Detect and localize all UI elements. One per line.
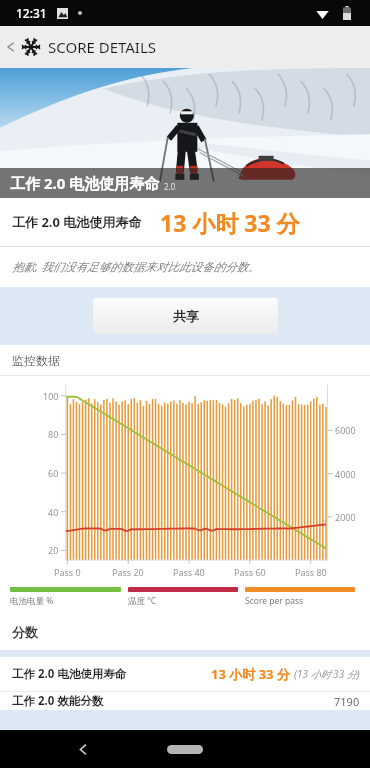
- staticText: 监控数据: [12, 353, 60, 368]
- button[interactable]: Back: [70, 736, 96, 762]
- staticText: 13 小时 33 分: [160, 207, 300, 238]
- staticText: 2000: [335, 511, 356, 523]
- staticText: Pass 40: [173, 566, 205, 578]
- staticText: 共享: [173, 308, 199, 324]
- staticText: 40: [48, 506, 59, 518]
- staticText: 7190: [334, 694, 360, 709]
- staticText: 工作 2.0 电池使用寿命: [10, 173, 160, 193]
- button[interactable]: 工作 2.0 效能分数: [0, 692, 370, 710]
- staticText: 20: [48, 544, 59, 556]
- staticText: 工作 2.0 电池使用寿命: [12, 213, 142, 231]
- staticText: 工作 2.0 电池使用寿命: [12, 666, 127, 682]
- staticText: 电池电量 %: [10, 595, 54, 607]
- staticText: SCORE DETAILS: [48, 37, 157, 57]
- staticText: Pass 0: [54, 566, 81, 578]
- staticText: 4000: [335, 468, 356, 480]
- staticText: (13 小时 33 分): [294, 667, 360, 681]
- button[interactable]: 共享: [93, 298, 278, 334]
- staticText: 12:31: [16, 5, 47, 21]
- staticText: Pass 20: [112, 566, 144, 578]
- staticText: Pass 80: [295, 566, 327, 578]
- staticText: 温度 °C: [128, 595, 157, 607]
- staticText: 13 小时 33 分: [211, 665, 290, 683]
- staticText: 工作 2.0 效能分数: [12, 693, 104, 709]
- staticText: 100: [43, 390, 59, 402]
- staticText: 6000: [335, 424, 356, 436]
- button[interactable]: Home: [167, 745, 203, 754]
- staticText: Pass 60: [234, 566, 266, 578]
- staticText: 60: [48, 467, 59, 479]
- staticText: 分数: [12, 624, 38, 640]
- button[interactable]: 工作 2.0 电池使用寿命: [0, 657, 370, 691]
- staticText: 80: [48, 428, 59, 440]
- staticText: 2.0: [164, 181, 176, 192]
- button[interactable]: Back: [1, 37, 21, 57]
- staticText: 抱歉, 我们没有足够的数据来对比此设备的分数。: [12, 259, 260, 275]
- staticText: Score per pass: [245, 595, 304, 607]
